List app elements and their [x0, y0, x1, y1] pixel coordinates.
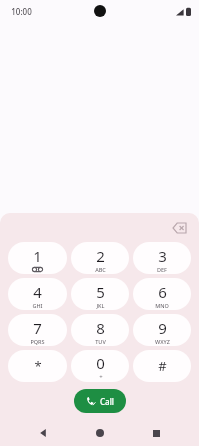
- button[interactable]: Backspace: [167, 216, 191, 240]
- staticText: 7: [33, 318, 42, 338]
- staticText: GHI: [32, 302, 43, 309]
- staticText: *: [34, 357, 42, 375]
- staticText: 4: [33, 282, 42, 302]
- staticText: WXYZ: [155, 338, 170, 345]
- staticText: MNO: [155, 302, 169, 309]
- button[interactable]: 4: [8, 278, 67, 310]
- button[interactable]: 0: [71, 350, 129, 382]
- staticText: TUV: [95, 338, 106, 345]
- staticText: 1: [33, 246, 42, 266]
- button[interactable]: 9: [133, 314, 191, 346]
- staticText: 0: [96, 353, 105, 373]
- staticText: Call: [100, 396, 114, 407]
- button[interactable]: 8: [71, 314, 129, 346]
- button[interactable]: #: [133, 350, 191, 382]
- staticText: PQRS: [30, 338, 45, 345]
- staticText: JKL: [96, 302, 105, 309]
- button[interactable]: 5: [71, 278, 129, 310]
- staticText: 10:00: [11, 6, 32, 17]
- button[interactable]: 1: [8, 242, 67, 274]
- button[interactable]: *: [8, 350, 67, 382]
- button[interactable]: 3: [133, 242, 191, 274]
- staticText: #: [158, 357, 167, 375]
- staticText: 5: [96, 282, 105, 302]
- staticText: ABC: [95, 266, 106, 273]
- staticText: 9: [158, 318, 167, 338]
- staticText: 2: [96, 246, 105, 266]
- button[interactable]: 6: [133, 278, 191, 310]
- staticText: +: [99, 373, 103, 381]
- button[interactable]: Call: [74, 389, 126, 413]
- button[interactable]: Back: [30, 420, 56, 446]
- button[interactable]: 7: [8, 314, 67, 346]
- staticText: DEF: [157, 266, 167, 273]
- staticText: 6: [158, 282, 167, 302]
- staticText: 8: [96, 318, 105, 338]
- button[interactable]: 2: [71, 242, 129, 274]
- staticText: 3: [158, 246, 167, 266]
- button[interactable]: Recents: [143, 420, 169, 446]
- button[interactable]: Home: [87, 420, 113, 446]
